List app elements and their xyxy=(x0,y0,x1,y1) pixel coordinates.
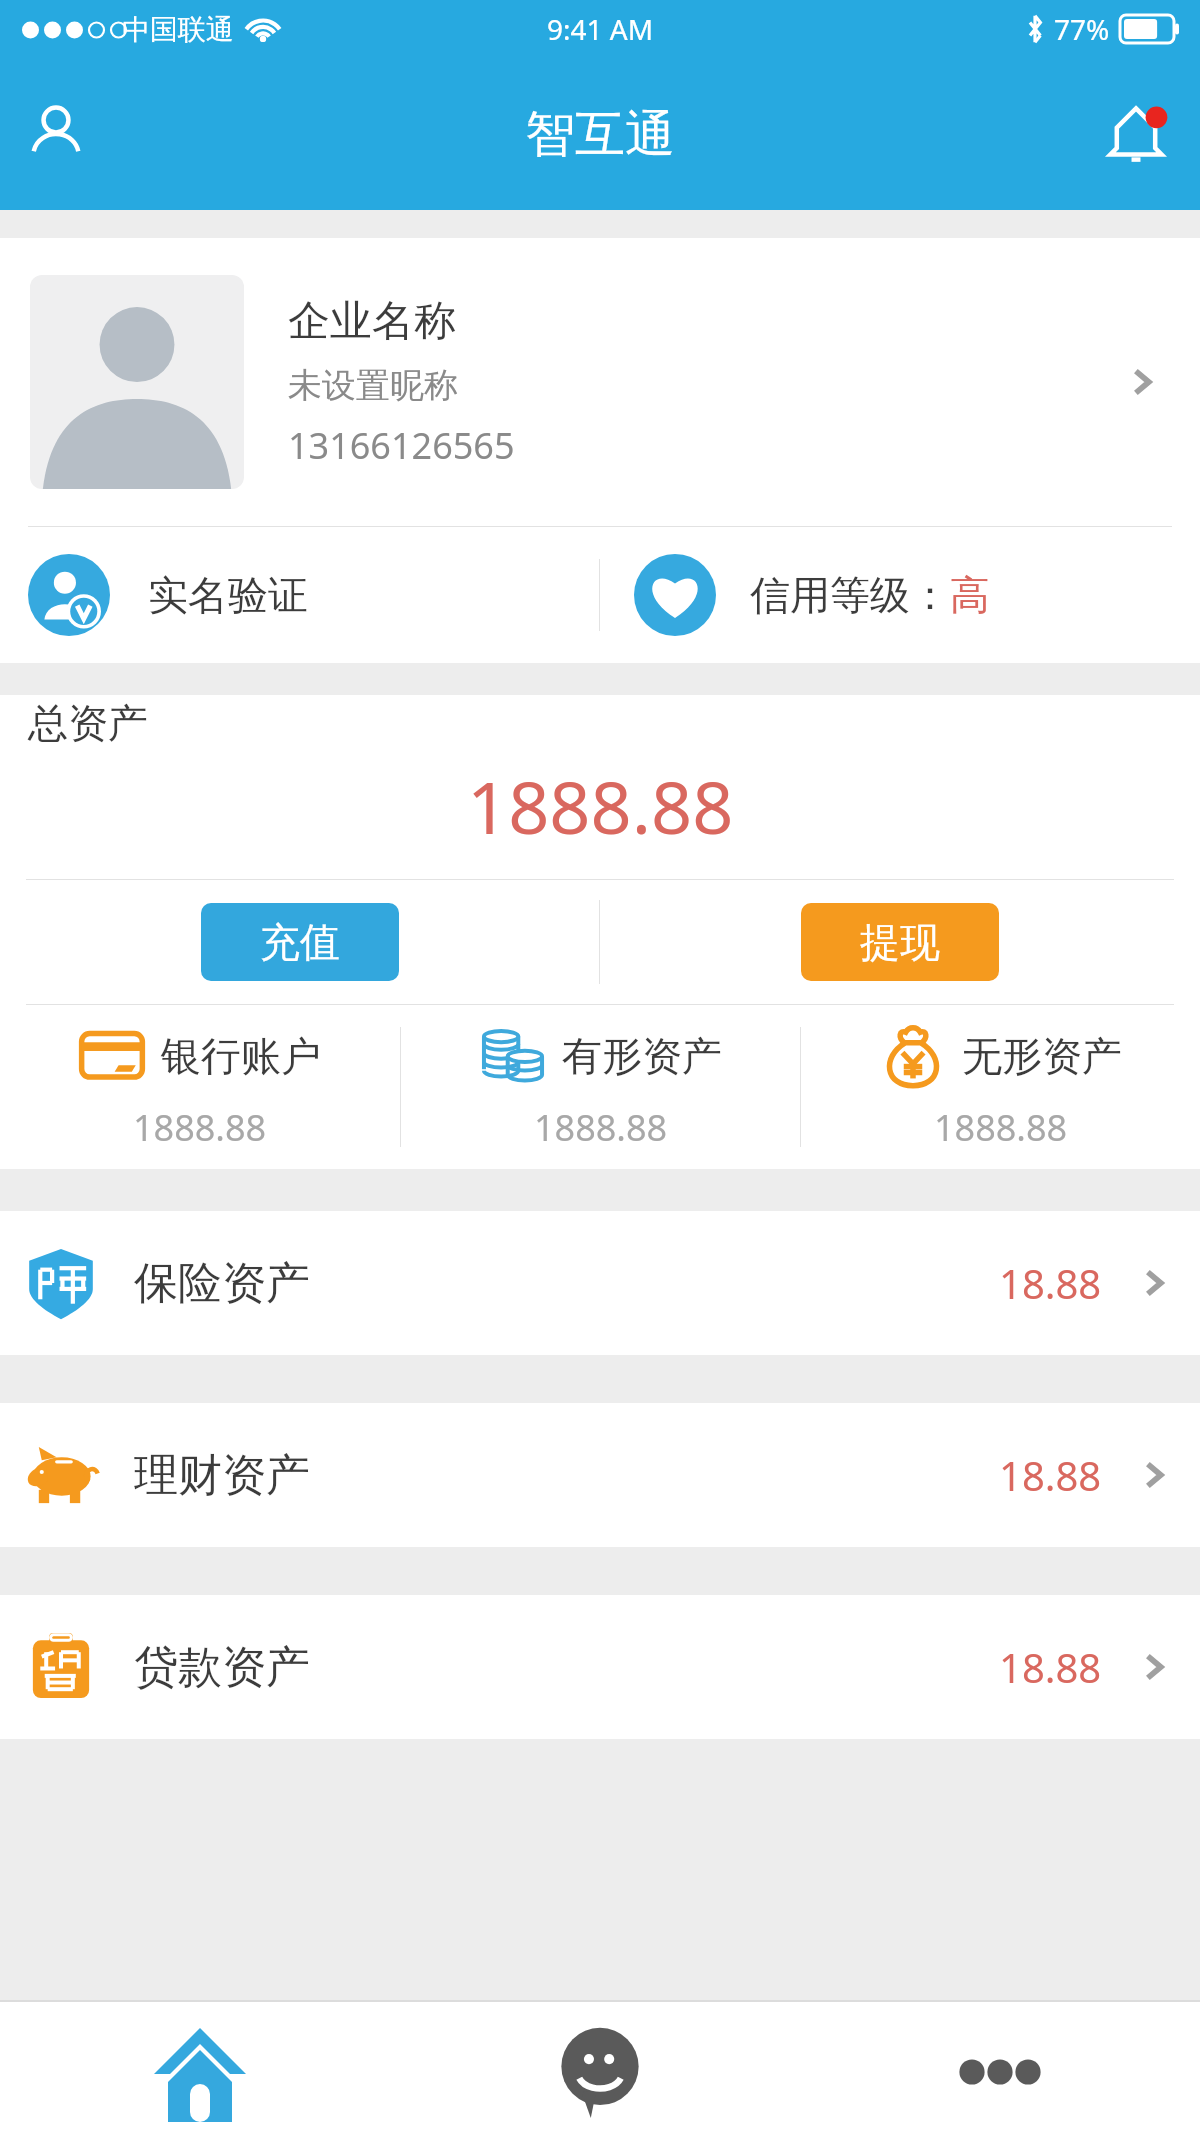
button[interactable]: 实名验证 xyxy=(0,527,599,663)
staticText: 18.88 xyxy=(999,1448,1102,1502)
staticText: 无形资产 xyxy=(962,1031,1122,1081)
staticText: 1888.88 xyxy=(934,1103,1068,1152)
button[interactable]: 无形资产 xyxy=(801,1005,1200,1169)
button[interactable]: 贷款资产 xyxy=(0,1595,1200,1739)
staticText: 实名验证 xyxy=(148,570,308,620)
staticText: 保险资产 xyxy=(134,1256,310,1311)
staticText: 贷款资产 xyxy=(134,1640,310,1695)
staticText: 高 xyxy=(950,570,990,620)
staticText: 信用等级： xyxy=(750,570,950,620)
staticText: 总资产 xyxy=(28,698,148,748)
staticText: 企业名称 xyxy=(288,295,456,348)
button[interactable]: 理财资产 xyxy=(0,1403,1200,1547)
button[interactable]: Notifications xyxy=(1090,88,1182,180)
staticText: 9:41 AM xyxy=(547,10,654,48)
staticText: 有形资产 xyxy=(562,1031,722,1081)
button[interactable]: 银行账户 xyxy=(0,1005,400,1169)
staticText: 未设置昵称 xyxy=(288,364,458,407)
staticText: 充值 xyxy=(260,917,340,967)
staticText: 18.88 xyxy=(999,1640,1102,1694)
staticText: 中国联通 xyxy=(122,12,234,47)
button[interactable]: 企业名称 xyxy=(0,238,1200,526)
staticText: 银行账户 xyxy=(161,1031,321,1081)
staticText: 智互通 xyxy=(525,103,675,166)
staticText: 77% xyxy=(1054,10,1110,48)
staticText: 1888.88 xyxy=(133,1103,267,1152)
button[interactable]: Home xyxy=(0,2002,400,2142)
button[interactable]: 提现 xyxy=(801,903,999,981)
button[interactable]: 信用等级： xyxy=(600,527,1200,663)
staticText: 18.88 xyxy=(999,1256,1102,1310)
button[interactable]: 有形资产 xyxy=(401,1005,800,1169)
staticText: 1888.88 xyxy=(534,1103,668,1152)
staticText: 理财资产 xyxy=(134,1448,310,1503)
staticText: 提现 xyxy=(860,917,940,967)
staticText: 1888.88 xyxy=(467,757,734,855)
button[interactable]: Messages xyxy=(400,2002,800,2142)
button[interactable]: 充值 xyxy=(201,903,399,981)
button[interactable]: More xyxy=(800,2002,1200,2142)
staticText: 13166126565 xyxy=(288,421,515,470)
button[interactable]: 保险资产 xyxy=(0,1211,1200,1355)
button[interactable]: Account xyxy=(12,90,100,178)
